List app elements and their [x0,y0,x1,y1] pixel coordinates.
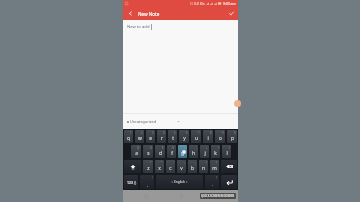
button[interactable]: 3 [146,130,155,143]
staticText: h [192,150,195,157]
staticText: . [212,182,213,187]
staticText: 6 [186,131,188,135]
staticText: ( [218,146,219,150]
staticText: Uncategorized [130,119,157,124]
staticText: : [184,161,185,165]
staticText: k [214,150,217,157]
staticText: y [183,135,186,142]
staticText: i [207,135,209,142]
staticText: x [158,165,161,172]
button[interactable]: + [200,145,209,158]
button[interactable] [221,175,237,189]
staticText: * [150,161,152,165]
staticText: 0 [234,131,236,135]
button[interactable]: # [143,145,153,158]
staticText: z [147,165,150,172]
staticText: 9 [222,131,224,135]
button[interactable]: 5 [168,130,177,143]
button[interactable]: ? [205,175,219,189]
staticText: 123 [127,180,133,185]
button[interactable]: ' [166,160,175,173]
button[interactable]: $ [155,145,165,158]
staticText: c [169,165,172,172]
staticText: ! [152,176,153,180]
staticText: + [206,146,208,150]
staticText: u [195,135,198,142]
staticText: l [226,150,228,157]
staticText: t [172,135,174,142]
button[interactable]: Quick Screen Recorder [201,194,235,198]
staticText: j [204,150,206,157]
button[interactable]: 2 [135,130,144,143]
staticText: ! [206,161,207,165]
staticText: p [231,135,234,142]
staticText: 3 [152,131,154,135]
staticText: 5 [174,131,176,135]
button[interactable]: % [167,145,176,158]
staticText: f [171,150,173,157]
button[interactable] [124,160,141,173]
button[interactable]: * [143,160,153,173]
staticText: - [196,146,197,150]
button[interactable]: Add [234,100,241,107]
staticText: r [161,135,163,142]
staticText: e [149,135,152,142]
staticText: New to add [127,24,150,30]
button[interactable]: 4 [157,130,166,143]
staticText: n [202,165,205,172]
button[interactable]: Uncategorized [123,114,238,129]
button[interactable]: English [156,175,203,189]
staticText: ; [195,161,196,165]
staticText: $ [162,146,164,150]
button[interactable]: ( [211,145,220,158]
staticText: w [138,135,142,142]
button[interactable]: @ [131,145,141,158]
staticText: @ [137,146,140,150]
staticText: QUICK SCREEN RECORDER [201,194,235,198]
staticText: , [147,182,148,187]
staticText: d [159,150,162,157]
staticText: 8 [210,131,212,135]
staticText: " [161,161,163,165]
staticText: % [172,146,175,150]
button[interactable]: 6 [179,130,189,143]
staticText: ? [216,161,218,165]
button[interactable]: - [189,145,198,158]
staticText: 9:03 am [223,1,236,6]
button[interactable]: 123 [124,175,138,189]
staticText: 2 [141,131,143,135]
staticText: m [212,165,217,172]
staticText: ? [216,176,218,180]
staticText: & [184,146,186,150]
staticText: ) [229,146,230,150]
button[interactable]: ! [140,175,154,189]
staticText: ' [173,161,174,165]
button[interactable]: Back [203,190,227,202]
staticText: 0.0 K/s [194,1,205,6]
button[interactable]: Save note [224,7,238,20]
staticText: # [150,146,152,150]
button[interactable]: Navigate up [123,7,137,20]
staticText: English [174,180,185,184]
staticText: q [127,135,130,142]
button[interactable]: 7 [191,130,201,143]
button[interactable]: 9 [215,130,225,143]
button[interactable]: 8 [203,130,213,143]
staticText: 4 [163,131,165,135]
button[interactable]: 1 [124,130,133,143]
button[interactable]: ) [222,145,231,158]
button[interactable]: & [178,145,187,158]
button[interactable]: ; [188,160,197,173]
staticText: s [147,150,150,157]
button[interactable] [221,160,237,173]
staticText: a [135,150,138,157]
button[interactable]: 0 [227,130,237,143]
staticText: New Note [138,11,160,17]
button[interactable]: ? [210,160,219,173]
button[interactable]: : [177,160,186,173]
button[interactable]: " [155,160,164,173]
button[interactable]: ! [199,160,208,173]
staticText: o [219,135,222,142]
